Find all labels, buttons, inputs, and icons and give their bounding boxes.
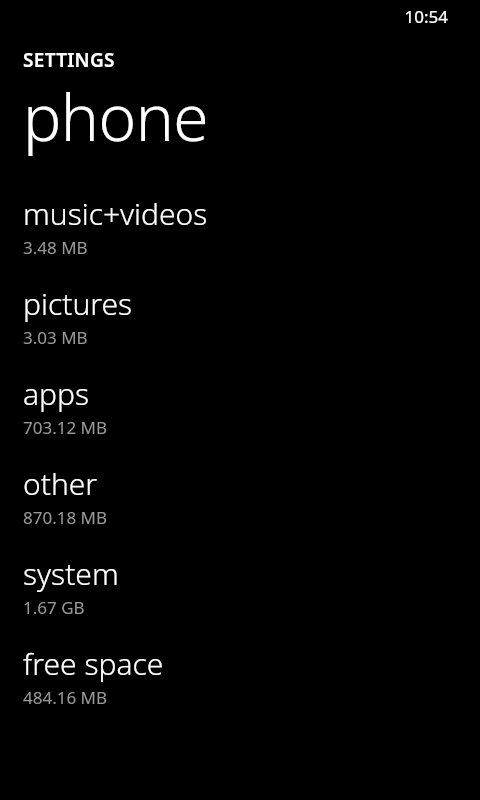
- button[interactable]: other: [0, 463, 480, 553]
- staticText: music+videos: [23, 193, 208, 234]
- staticText: 870.18 MB: [23, 506, 108, 529]
- staticText: 3.48 MB: [23, 236, 88, 259]
- staticText: SETTINGS: [23, 47, 115, 73]
- staticText: 1.67 GB: [23, 596, 85, 619]
- staticText: 703.12 MB: [23, 416, 108, 439]
- staticText: 3.03 MB: [23, 326, 88, 349]
- staticText: other: [23, 463, 98, 504]
- button[interactable]: music+videos: [0, 193, 480, 283]
- staticText: pictures: [23, 283, 133, 324]
- button[interactable]: free space: [0, 643, 480, 733]
- staticText: system: [23, 553, 119, 594]
- button[interactable]: apps: [0, 373, 480, 463]
- button[interactable]: pictures: [0, 283, 480, 373]
- staticText: 10:54: [404, 5, 448, 28]
- staticText: apps: [23, 373, 90, 414]
- staticText: 484.16 MB: [23, 686, 108, 709]
- staticText: free space: [23, 643, 164, 684]
- button[interactable]: system: [0, 553, 480, 643]
- staticText: phone: [23, 73, 209, 160]
